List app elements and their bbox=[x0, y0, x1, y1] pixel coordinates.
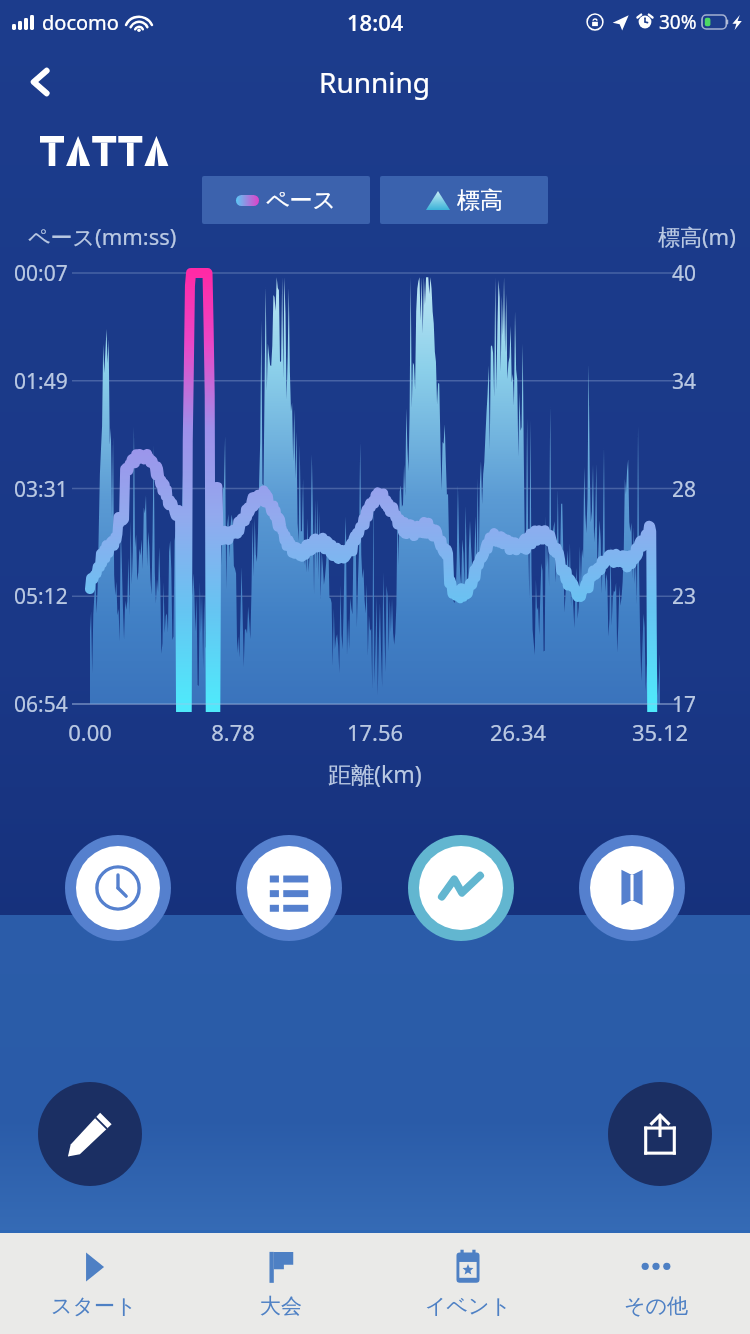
staticText: ペース bbox=[266, 186, 337, 215]
staticText: 01:49 bbox=[14, 367, 68, 396]
staticText: 8.78 bbox=[188, 717, 278, 747]
staticText: 0.00 bbox=[45, 717, 135, 747]
button[interactable]: Splits bbox=[236, 835, 342, 941]
staticText: 標高 bbox=[457, 186, 503, 215]
staticText: 34 bbox=[672, 367, 697, 396]
button[interactable]: イベント bbox=[374, 1233, 562, 1334]
button[interactable]: Share bbox=[608, 1082, 712, 1186]
staticText: その他 bbox=[624, 1293, 688, 1319]
button[interactable]: 標高 bbox=[380, 176, 548, 224]
staticText: 大会 bbox=[260, 1293, 302, 1319]
staticText: 17.56 bbox=[330, 717, 420, 747]
staticText: 17 bbox=[672, 690, 697, 719]
staticText: 30% bbox=[659, 9, 697, 35]
button[interactable]: その他 bbox=[562, 1233, 750, 1334]
button[interactable]: スタート bbox=[0, 1233, 187, 1334]
staticText: 18:04 bbox=[347, 7, 404, 37]
staticText: イベント bbox=[425, 1293, 511, 1319]
staticText: 26.34 bbox=[473, 717, 563, 747]
staticText: docomo bbox=[42, 9, 119, 36]
staticText: 03:31 bbox=[14, 475, 68, 504]
staticText: ペース(mm:ss) bbox=[28, 221, 177, 251]
staticText: 標高(m) bbox=[658, 221, 736, 251]
button[interactable]: Time bbox=[65, 835, 171, 941]
button[interactable]: 大会 bbox=[187, 1233, 374, 1334]
staticText: 23 bbox=[672, 582, 697, 611]
staticText: Running bbox=[319, 63, 431, 101]
button[interactable]: Map bbox=[579, 835, 685, 941]
staticText: 05:12 bbox=[14, 582, 68, 611]
staticText: スタート bbox=[51, 1293, 137, 1319]
staticText: 35.12 bbox=[615, 717, 705, 747]
button[interactable]: Graph bbox=[408, 835, 514, 941]
button[interactable]: Back bbox=[12, 53, 70, 111]
staticText: 40 bbox=[672, 259, 697, 288]
staticText: 28 bbox=[672, 475, 697, 504]
staticText: 距離(km) bbox=[328, 758, 422, 789]
button[interactable]: ペース bbox=[202, 176, 370, 224]
staticText: 06:54 bbox=[14, 690, 68, 719]
button[interactable]: Edit bbox=[38, 1082, 142, 1186]
staticText: 00:07 bbox=[14, 259, 68, 288]
